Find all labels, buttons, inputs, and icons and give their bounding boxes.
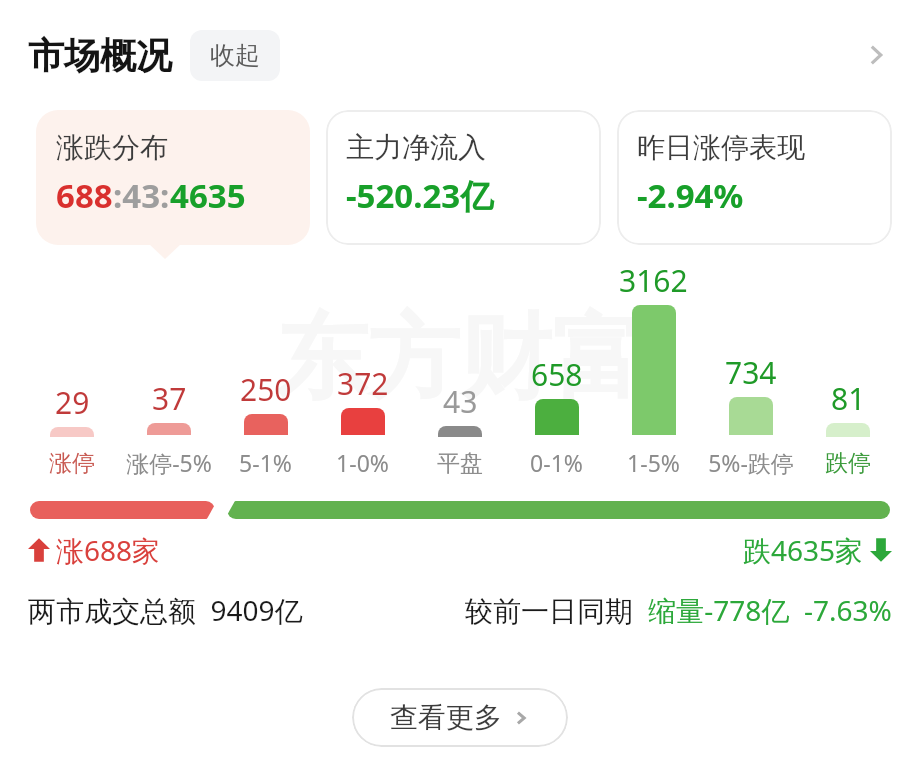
staticText: 3162	[619, 260, 688, 301]
staticText: 1-5%	[627, 447, 680, 478]
staticText: 收起	[210, 40, 260, 71]
staticText: 0-1%	[530, 447, 583, 478]
button[interactable]: 主力净流入	[326, 110, 601, 245]
button[interactable]: 昨日涨停表现	[617, 110, 892, 245]
staticText: 缩量-778亿 -7.63%	[641, 591, 892, 629]
staticText: 372	[337, 363, 389, 404]
staticText: 1-0%	[336, 447, 389, 478]
staticText: 涨停	[49, 449, 95, 478]
staticText: 734	[725, 352, 777, 393]
staticText: 东方财富	[276, 300, 644, 416]
staticText: 跌停	[825, 449, 871, 478]
staticText: 主力净流入	[346, 130, 486, 165]
staticText: 43	[443, 381, 478, 422]
button[interactable]: 查看更多	[352, 688, 568, 747]
staticText: 涨停-5%	[126, 447, 212, 478]
staticText: 81	[831, 378, 866, 419]
staticText: 两市成交总额 9409亿	[28, 591, 303, 629]
button[interactable]: More	[852, 31, 900, 79]
staticText: 市场概况	[28, 33, 172, 78]
staticText: 涨688家	[56, 531, 161, 569]
staticText: 较前一日同期	[465, 591, 641, 629]
staticText: 查看更多	[390, 700, 502, 735]
staticText: 涨跌分布	[56, 130, 168, 165]
staticText: 昨日涨停表现	[637, 130, 805, 165]
button[interactable]: 涨跌分布	[36, 110, 310, 245]
staticText: 688	[56, 173, 113, 218]
staticText: :43:	[113, 173, 170, 218]
staticText: -2.94%	[637, 173, 744, 218]
staticText: 250	[240, 369, 292, 410]
staticText: 658	[531, 354, 583, 395]
staticText: 37	[152, 378, 187, 419]
button[interactable]: 收起	[190, 30, 280, 81]
staticText: 平盘	[437, 449, 483, 478]
staticText: 4635	[170, 173, 246, 218]
staticText: -520.23亿	[346, 173, 494, 218]
staticText: 5%-跌停	[708, 447, 794, 478]
staticText: 5-1%	[239, 447, 292, 478]
staticText: 29	[55, 382, 90, 423]
staticText: 跌4635家	[743, 531, 864, 569]
